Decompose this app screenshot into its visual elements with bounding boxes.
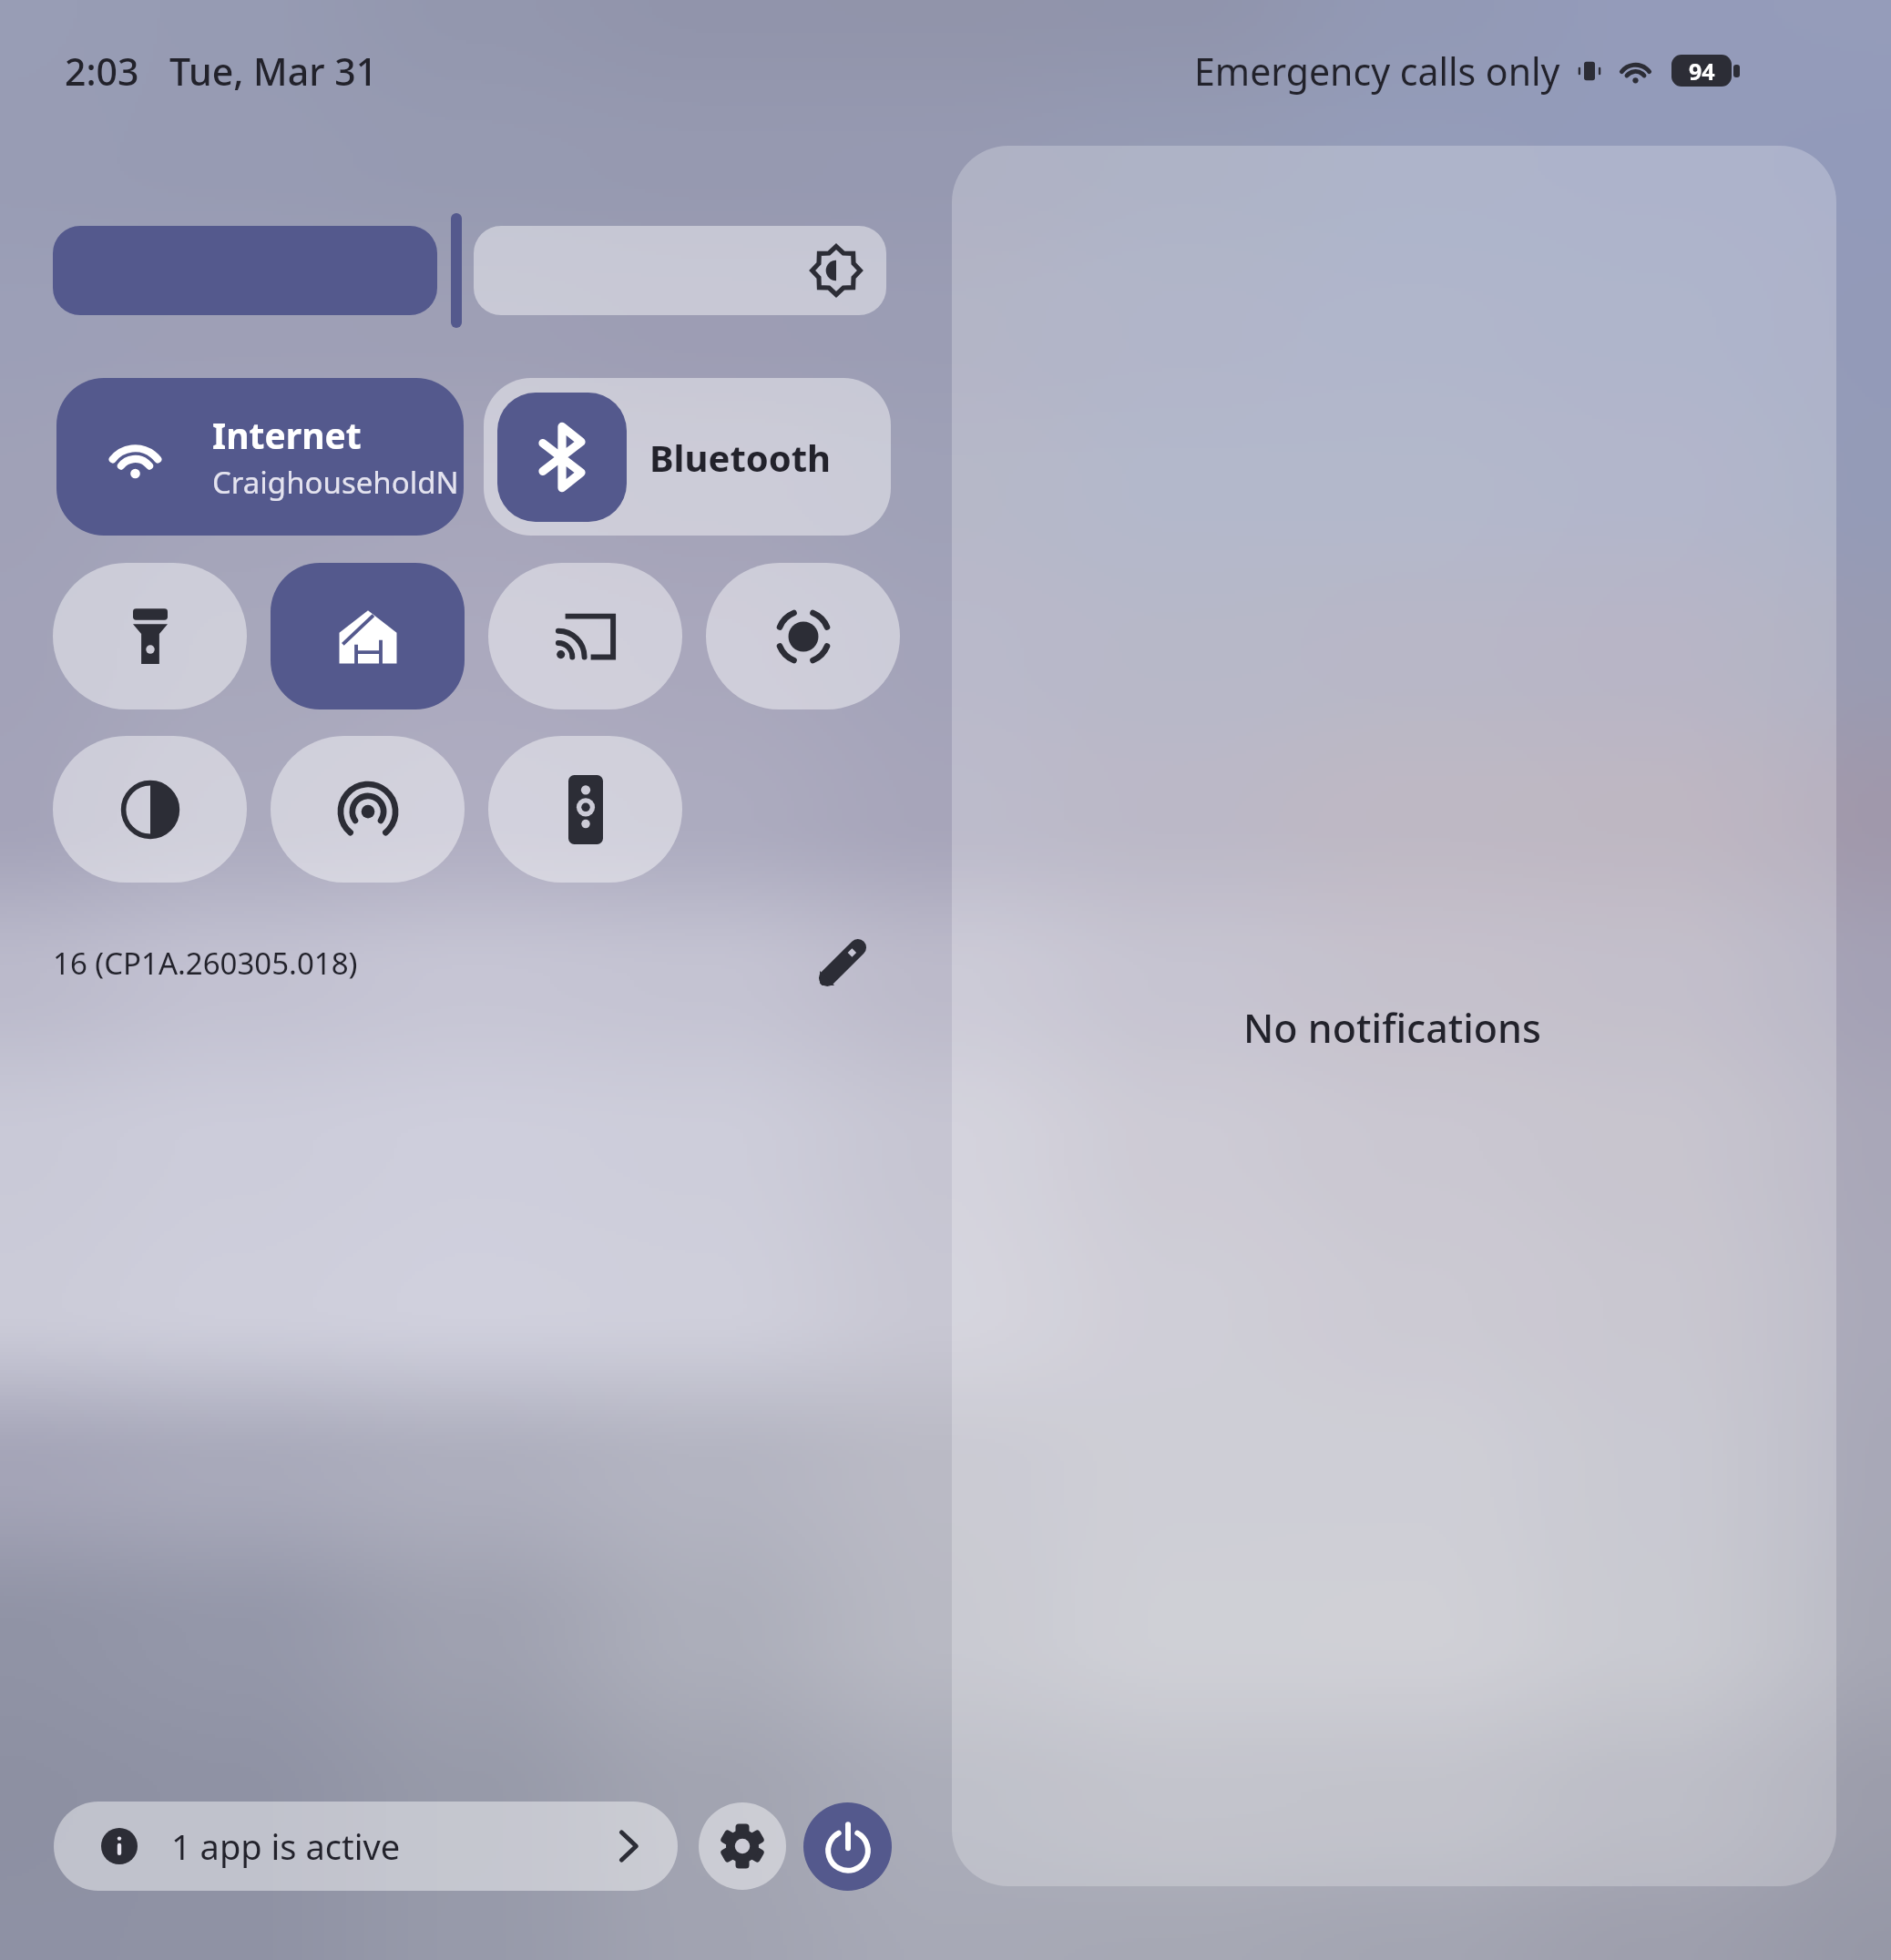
button[interactable]: Brightness xyxy=(53,226,437,315)
staticText: Bluetooth xyxy=(649,433,832,482)
button[interactable]: Flashlight xyxy=(53,563,247,709)
button[interactable]: Notifications xyxy=(952,146,1836,1886)
button[interactable]: Screen record xyxy=(706,563,900,709)
staticText: Internet xyxy=(212,411,362,459)
staticText: 2:03 xyxy=(65,46,139,97)
button[interactable]: Internet xyxy=(56,378,464,536)
button[interactable]: Home xyxy=(271,563,465,709)
staticText: No notifications xyxy=(1243,1001,1541,1055)
button[interactable]: Brightness level xyxy=(474,226,886,315)
staticText: 1 app is active xyxy=(171,1822,401,1870)
staticText: 16 (CP1A.260305.018) xyxy=(53,943,358,984)
staticText: Emergency calls only xyxy=(1194,46,1560,97)
button[interactable]: Device controls xyxy=(488,736,682,883)
button[interactable]: Settings xyxy=(699,1802,786,1890)
staticText: CraighouseholdN xyxy=(212,462,459,503)
staticText: Tue, Mar 31 xyxy=(169,46,378,97)
staticText: 94 xyxy=(1689,56,1715,87)
button[interactable]: 1 app is active xyxy=(54,1802,678,1891)
button[interactable]: Bluetooth xyxy=(484,378,891,536)
button[interactable]: Nearby share xyxy=(271,736,465,883)
button[interactable]: Power xyxy=(803,1802,892,1891)
button[interactable]: Edit tiles xyxy=(811,931,874,995)
button[interactable]: Cast xyxy=(488,563,682,709)
button[interactable]: Dark theme xyxy=(53,736,247,883)
